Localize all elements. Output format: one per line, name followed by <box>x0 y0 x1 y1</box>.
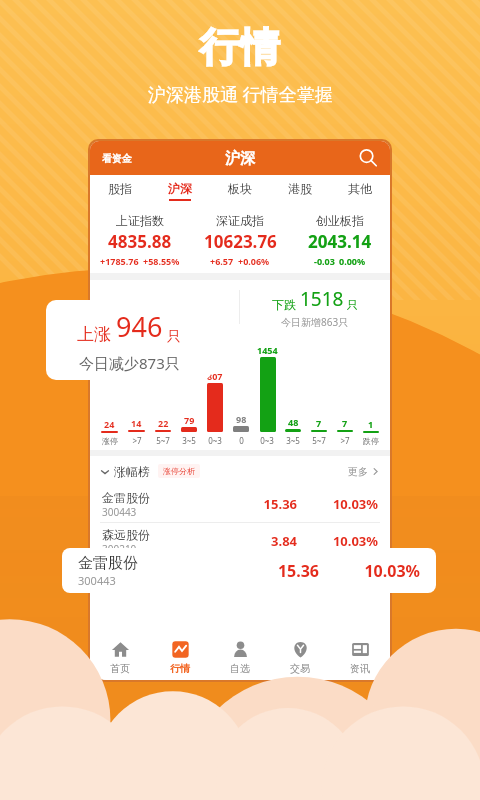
staticText: +58.55% <box>143 255 180 267</box>
staticText: 10.03% <box>319 560 420 582</box>
staticText: 板块 <box>228 181 252 196</box>
button[interactable]: 行情 <box>150 634 210 680</box>
staticText: 沪深 <box>225 149 255 168</box>
staticText: 港股 <box>288 181 312 196</box>
staticText: 22 <box>158 417 169 429</box>
staticText: 首页 <box>110 662 130 675</box>
staticText: 1518 <box>300 286 344 312</box>
button[interactable]: 涨幅榜 <box>100 464 150 479</box>
staticText: 沪深 <box>168 181 192 196</box>
staticText: +6.57 <box>210 255 234 267</box>
button[interactable]: 创业板指 <box>290 213 390 267</box>
staticText: 15.36 <box>216 495 297 513</box>
staticText: +0.06% <box>238 255 270 267</box>
staticText: 金雷股份 <box>102 490 150 505</box>
staticText: 2043.14 <box>308 230 372 253</box>
staticText: 5~7 <box>156 435 170 446</box>
staticText: 资讯 <box>350 662 370 675</box>
staticText: 行情 <box>170 662 190 675</box>
staticText: 0 <box>239 435 244 446</box>
button[interactable]: 下跌 <box>240 280 390 334</box>
staticText: 股指 <box>108 181 132 196</box>
staticText: 更多 <box>348 465 368 478</box>
staticText: 深证成指 <box>216 213 264 228</box>
staticText: 只 <box>344 297 358 312</box>
button[interactable]: 上涨 <box>46 300 212 380</box>
button[interactable]: 看资金 <box>100 148 134 169</box>
staticText: 跌停 <box>363 436 379 446</box>
button[interactable]: 上证指数 <box>90 213 190 267</box>
button[interactable]: 更多 <box>348 465 380 478</box>
staticText: 3~5 <box>182 435 196 446</box>
button[interactable]: 自选 <box>210 634 270 680</box>
staticText: 金雷股份 <box>78 554 138 573</box>
staticText: 10623.76 <box>204 230 277 253</box>
staticText: 今日减少873只 <box>79 353 180 373</box>
staticText: 交易 <box>290 662 310 675</box>
staticText: 10.03% <box>297 532 378 550</box>
staticText: 自选 <box>230 662 250 675</box>
staticText: +1785.76 <box>100 255 139 267</box>
staticText: 5~7 <box>312 435 326 446</box>
staticText: 3.84 <box>216 532 297 550</box>
button[interactable]: 7 <box>332 344 358 446</box>
staticText: 涨停 <box>102 436 118 446</box>
button[interactable]: 1 <box>358 345 384 446</box>
button[interactable]: 板块 <box>210 175 270 207</box>
button[interactable]: 资讯 <box>330 634 390 680</box>
staticText: 沪深港股通 行情全掌握 <box>148 82 333 107</box>
staticText: 0~3 <box>208 435 222 446</box>
staticText: 今日新增863只 <box>281 315 349 329</box>
button[interactable]: 港股 <box>270 175 330 207</box>
button[interactable]: 其他 <box>330 175 390 207</box>
button[interactable]: 1454 <box>254 344 280 446</box>
staticText: 涨幅榜 <box>114 464 150 479</box>
staticText: 上证指数 <box>116 213 164 228</box>
staticText: 15.36 <box>223 560 319 582</box>
button[interactable]: 股指 <box>90 175 150 207</box>
button[interactable]: 79 <box>176 344 202 446</box>
staticText: 24 <box>104 418 115 430</box>
staticText: 0~3 <box>260 435 274 446</box>
staticText: 807 <box>207 370 223 382</box>
staticText: 0.00% <box>339 255 366 267</box>
button[interactable]: 807 <box>202 344 228 446</box>
staticText: 涨停分析 <box>163 466 195 476</box>
staticText: 14 <box>131 417 142 429</box>
button[interactable]: 交易 <box>270 634 330 680</box>
staticText: -0.03 <box>314 255 335 267</box>
staticText: 森远股份 <box>102 527 150 542</box>
staticText: 其他 <box>348 181 372 196</box>
button[interactable]: 搜索 <box>356 146 380 170</box>
staticText: 下跌 <box>272 296 300 312</box>
staticText: 只 <box>163 326 181 345</box>
staticText: 1454 <box>257 344 278 356</box>
button[interactable]: 沪深 <box>150 175 210 207</box>
staticText: 300210 <box>102 542 137 556</box>
button[interactable]: 涨停分析 <box>158 464 200 478</box>
staticText: 79 <box>184 414 195 426</box>
button[interactable]: 森远股份 <box>90 523 390 559</box>
button[interactable]: 48 <box>280 344 306 446</box>
staticText: >7 <box>340 435 350 446</box>
staticText: 看资金 <box>102 152 132 165</box>
button[interactable]: 98 <box>228 344 254 446</box>
staticText: >7 <box>132 435 142 446</box>
button[interactable]: 金雷股份 <box>62 548 436 593</box>
staticText: 4835.88 <box>108 230 172 253</box>
staticText: 1 <box>368 418 374 430</box>
staticText: 300443 <box>78 573 116 588</box>
button[interactable]: 24 <box>96 345 123 446</box>
button[interactable]: 7 <box>306 344 332 446</box>
button[interactable]: 金雷股份 <box>90 486 390 522</box>
staticText: 上涨 <box>77 322 116 345</box>
staticText: 7 <box>342 417 348 429</box>
button[interactable]: 22 <box>150 344 176 446</box>
button[interactable]: 14 <box>123 344 150 446</box>
button[interactable]: 首页 <box>90 634 150 680</box>
staticText: 10.03% <box>297 495 378 513</box>
staticText: 7 <box>316 417 322 429</box>
staticText: 48 <box>288 416 299 428</box>
staticText: 行情 <box>200 22 280 72</box>
button[interactable]: 深证成指 <box>190 213 290 267</box>
